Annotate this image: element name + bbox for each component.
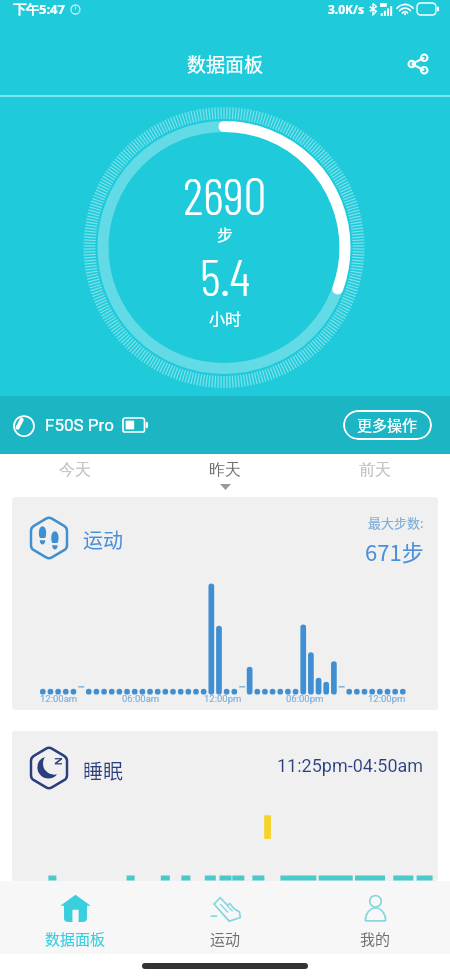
staticText: 2690 bbox=[183, 164, 267, 225]
staticText: 下午5:47 bbox=[13, 0, 65, 18]
staticText: 更多操作 bbox=[357, 414, 418, 436]
staticText: 12:00pm bbox=[368, 693, 406, 704]
staticText: 最大步数: bbox=[368, 513, 424, 532]
button[interactable]: 我的 bbox=[300, 881, 450, 961]
staticText: 3.0K/s bbox=[328, 1, 365, 17]
button[interactable]: 睡眠 bbox=[12, 731, 438, 881]
staticText: 数据面板 bbox=[187, 50, 264, 78]
staticText: 昨天 bbox=[209, 460, 241, 480]
staticText: 数据面板 bbox=[45, 928, 106, 950]
staticText: F50S Pro bbox=[45, 415, 114, 435]
staticText: 睡眠 bbox=[83, 756, 123, 785]
button[interactable]: 数据面板 bbox=[0, 881, 150, 961]
staticText: 5.4 bbox=[200, 245, 250, 306]
button[interactable]: 运动 bbox=[150, 881, 300, 961]
button[interactable]: 更多操作 bbox=[343, 410, 432, 440]
button[interactable]: Share bbox=[394, 40, 442, 88]
staticText: 前天 bbox=[359, 460, 391, 480]
staticText: 11:25pm-04:50am bbox=[277, 755, 424, 776]
staticText: 671步 bbox=[365, 535, 424, 567]
staticText: 06:00pm bbox=[286, 693, 324, 704]
staticText: 今天 bbox=[59, 460, 91, 480]
staticText: 运动 bbox=[83, 525, 123, 554]
staticText: 06:00am bbox=[122, 693, 160, 704]
staticText: 我的 bbox=[360, 928, 391, 950]
staticText: 小时 bbox=[209, 306, 242, 329]
staticText: 12:00pm bbox=[204, 693, 242, 704]
button[interactable]: 今天 bbox=[0, 454, 150, 497]
button[interactable]: 运动 bbox=[12, 497, 438, 710]
staticText: 运动 bbox=[210, 928, 241, 950]
staticText: 步 bbox=[217, 222, 234, 245]
button[interactable]: 昨天 bbox=[150, 454, 300, 497]
button[interactable]: 前天 bbox=[300, 454, 450, 497]
staticText: 12:00am bbox=[40, 693, 78, 704]
